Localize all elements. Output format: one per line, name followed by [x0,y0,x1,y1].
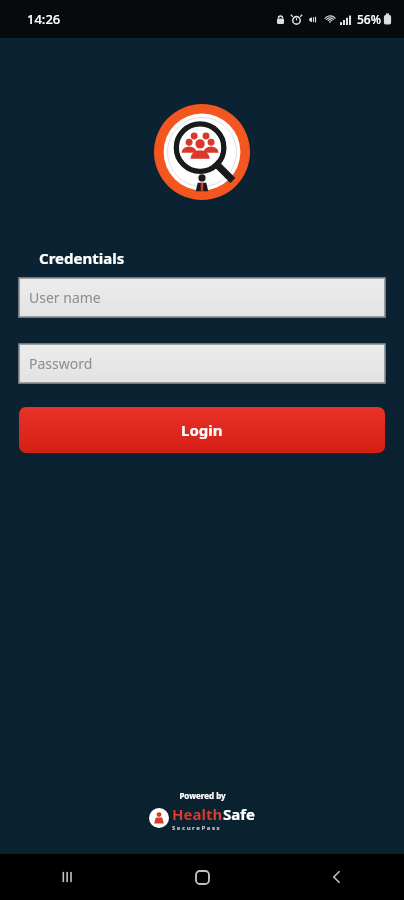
button[interactable]: User name [19,278,385,317]
button[interactable]: Home [178,854,226,900]
button[interactable]: Recent apps [43,854,91,900]
button[interactable]: Back [313,854,361,900]
staticText: Powered by [179,790,226,801]
button[interactable]: Password [19,344,385,383]
staticText: Safe [223,804,256,824]
staticText: Password [29,354,93,373]
staticText: Credentials [39,248,125,268]
staticText: S e c u r e P a s s [172,824,220,832]
staticText: 14:26 [27,10,61,28]
staticText: 56% [357,11,381,27]
button[interactable]: Login [19,407,385,453]
staticText: Login [181,420,223,440]
staticText: Health [172,804,223,824]
staticText: User name [29,288,101,307]
